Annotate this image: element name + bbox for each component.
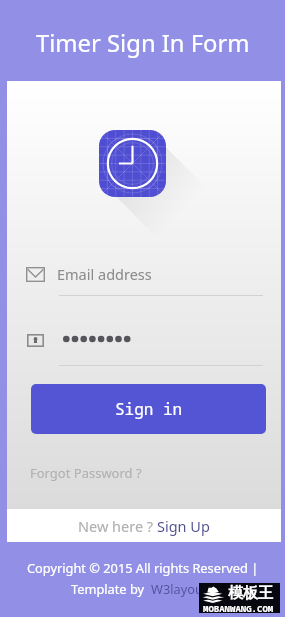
button[interactable]: W3layouts — [151, 580, 214, 597]
staticText: W3layouts — [151, 580, 214, 597]
button[interactable]: Sign Up — [157, 516, 210, 536]
staticText: Sign Up — [157, 516, 210, 536]
other: Watermark mobanwang.com — [199, 583, 280, 613]
staticText: Template by — [71, 580, 151, 597]
button[interactable]: Sign in — [31, 384, 266, 434]
staticText: New here ? — [78, 516, 157, 536]
staticText: Forgot Password ? — [30, 464, 142, 482]
staticText: Copyright © 2015 All rights Reserved | — [27, 559, 259, 576]
button[interactable]: Forgot Password ? — [30, 464, 142, 482]
staticText: MOBANWANG.COM — [203, 602, 274, 614]
staticText: 模板王 — [228, 584, 273, 603]
staticText: Email address — [57, 264, 152, 284]
staticText: Timer Sign In Form — [36, 27, 250, 59]
staticText: Sign in — [115, 398, 183, 420]
